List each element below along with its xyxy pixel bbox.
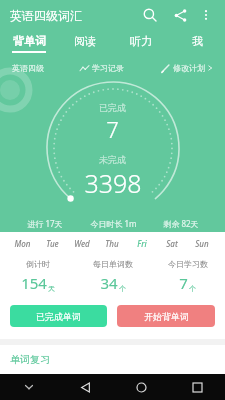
staticText: 未完成 <box>99 154 126 165</box>
button[interactable]: 今日学习数 <box>150 259 225 293</box>
staticText: 今日时长 1m <box>90 218 137 229</box>
staticText: 进行 17天 <box>27 218 63 229</box>
staticText: Wed <box>74 238 90 249</box>
button[interactable]: 我 <box>169 30 225 56</box>
staticText: Tue <box>46 238 59 249</box>
button[interactable]: Search <box>137 2 163 28</box>
staticText: Mon <box>14 238 31 249</box>
staticText: 34 <box>100 273 118 293</box>
staticText: 英语四级 <box>12 63 44 73</box>
staticText: Sun <box>195 238 209 249</box>
staticText: 背单词 <box>13 34 46 48</box>
button[interactable]: 听力 <box>113 30 169 56</box>
button[interactable]: Recent apps <box>169 374 225 400</box>
button[interactable]: 背单词 <box>0 30 57 56</box>
button[interactable]: More options <box>195 4 217 26</box>
button[interactable]: Back <box>57 374 113 400</box>
staticText: 我 <box>192 34 203 48</box>
button[interactable]: 已完成单词 <box>10 305 107 327</box>
staticText: 开始背单词 <box>144 311 189 322</box>
staticText: 3398 <box>84 166 142 200</box>
button[interactable]: Share <box>167 2 193 28</box>
button[interactable]: 学习记录 <box>80 63 124 73</box>
staticText: 个 <box>189 284 196 293</box>
staticText: 已完成单词 <box>36 311 81 322</box>
staticText: 今日学习数 <box>168 259 208 269</box>
staticText: 听力 <box>130 34 152 48</box>
staticText: 7 <box>179 273 188 293</box>
staticText: 154 <box>21 273 47 293</box>
button[interactable]: 倒计时 <box>0 259 75 293</box>
staticText: 天 <box>48 284 55 293</box>
staticText: Thu <box>105 238 119 249</box>
staticText: 修改计划 <box>173 63 205 73</box>
staticText: Fri <box>137 238 147 249</box>
staticText: 阅读 <box>74 34 96 48</box>
button[interactable]: 修改计划 <box>161 63 213 73</box>
staticText: 学习记录 <box>92 63 124 73</box>
button[interactable]: Hide keyboard <box>0 374 57 400</box>
staticText: 7 <box>106 114 119 144</box>
button[interactable]: 阅读 <box>57 30 113 56</box>
button[interactable]: Home <box>113 374 169 400</box>
staticText: Sat <box>166 238 178 249</box>
staticText: 每日单词数 <box>93 259 133 269</box>
staticText: 倒计时 <box>26 259 50 269</box>
button[interactable]: 开始背单词 <box>117 305 215 327</box>
button[interactable]: 每日单词数 <box>75 259 150 293</box>
staticText: 单词复习 <box>10 353 50 366</box>
staticText: 剩余 82天 <box>163 218 199 229</box>
staticText: 个 <box>119 284 126 293</box>
staticText: 英语四级词汇 <box>10 8 82 23</box>
staticText: 已完成 <box>99 102 126 113</box>
